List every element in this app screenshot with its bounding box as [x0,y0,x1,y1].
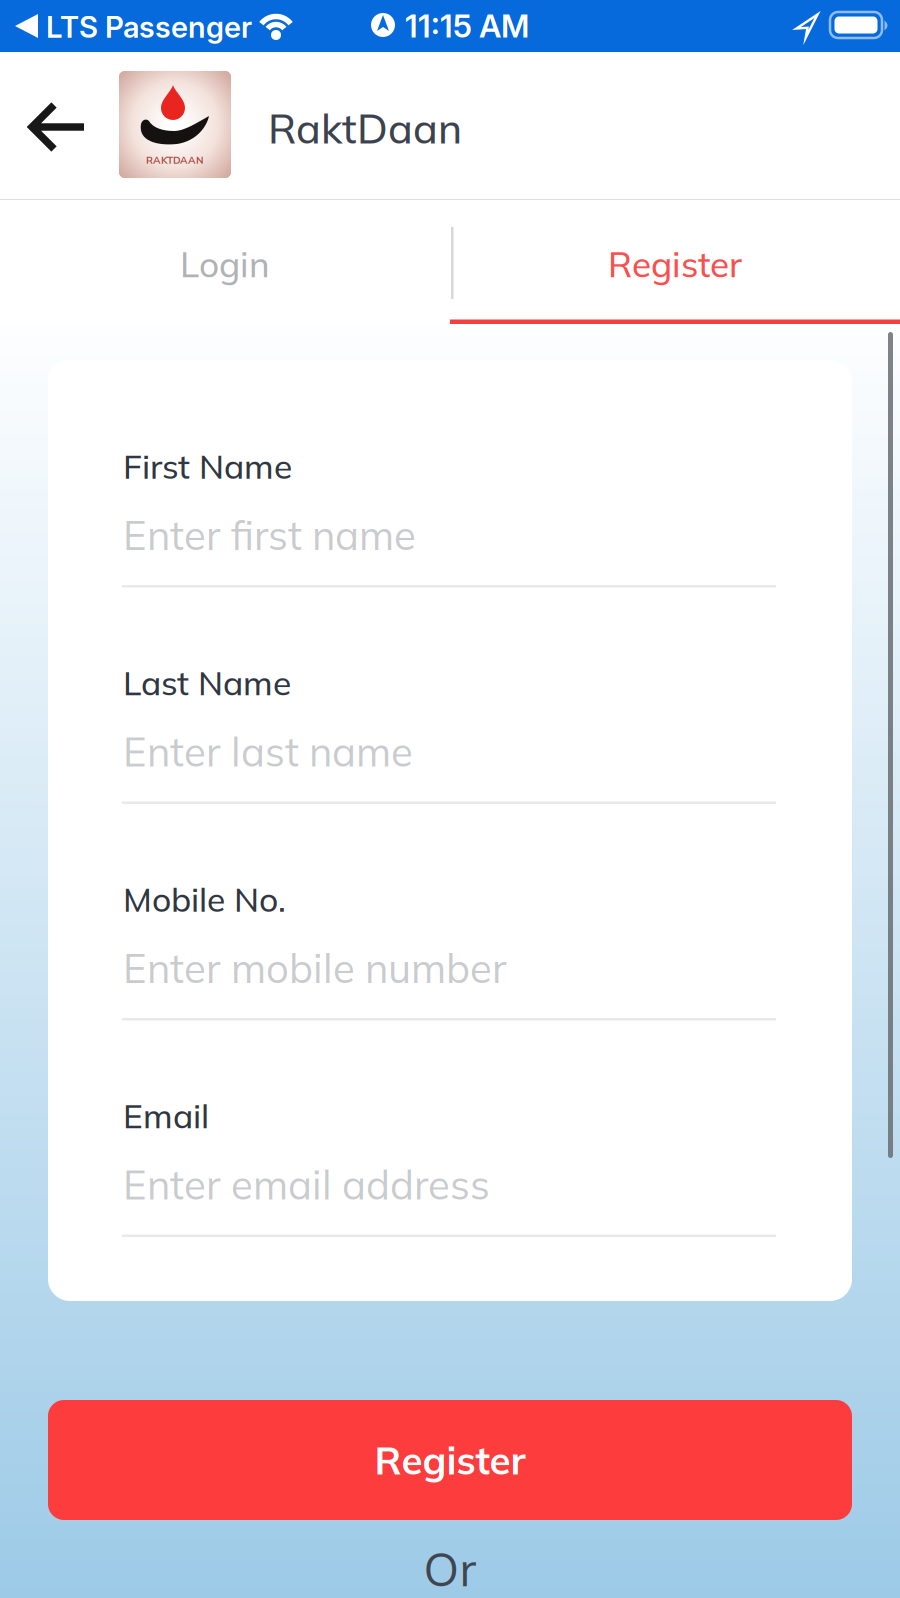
staticText: First Name [123,445,292,487]
button[interactable]: Back [26,103,90,151]
staticText: LTS Passenger [46,9,252,45]
textField[interactable]: Enter first name [122,528,778,558]
button[interactable]: Login [1,209,449,319]
staticText: RaktDaan [268,102,462,154]
staticText: Mobile No. [123,878,286,920]
staticText: Enter email address [122,1177,335,1207]
staticText: Enter last name [122,744,290,774]
textField[interactable]: Enter email address [122,1177,778,1207]
staticText: Register [608,242,742,286]
staticText: Register [374,1436,525,1484]
staticText: RAKTDAAN [146,154,204,166]
textField[interactable]: Enter last name [122,744,778,774]
staticText: Enter mobile number [122,961,350,991]
staticText: Last Name [123,661,291,703]
textField[interactable]: Enter mobile number [122,961,778,991]
staticText: Login [180,242,270,286]
staticText: Enter first name [122,528,294,558]
button[interactable]: Register [451,209,899,319]
button[interactable]: Register [48,1400,852,1520]
staticText: Enter mobile number [123,943,507,993]
staticText: Enter first name [123,510,416,560]
staticText: 11:15 AM [405,7,529,45]
staticText: Enter last name [123,726,413,777]
staticText: Or [423,1540,476,1598]
staticText: Email [123,1094,209,1136]
staticText: Enter email address [123,1159,490,1210]
